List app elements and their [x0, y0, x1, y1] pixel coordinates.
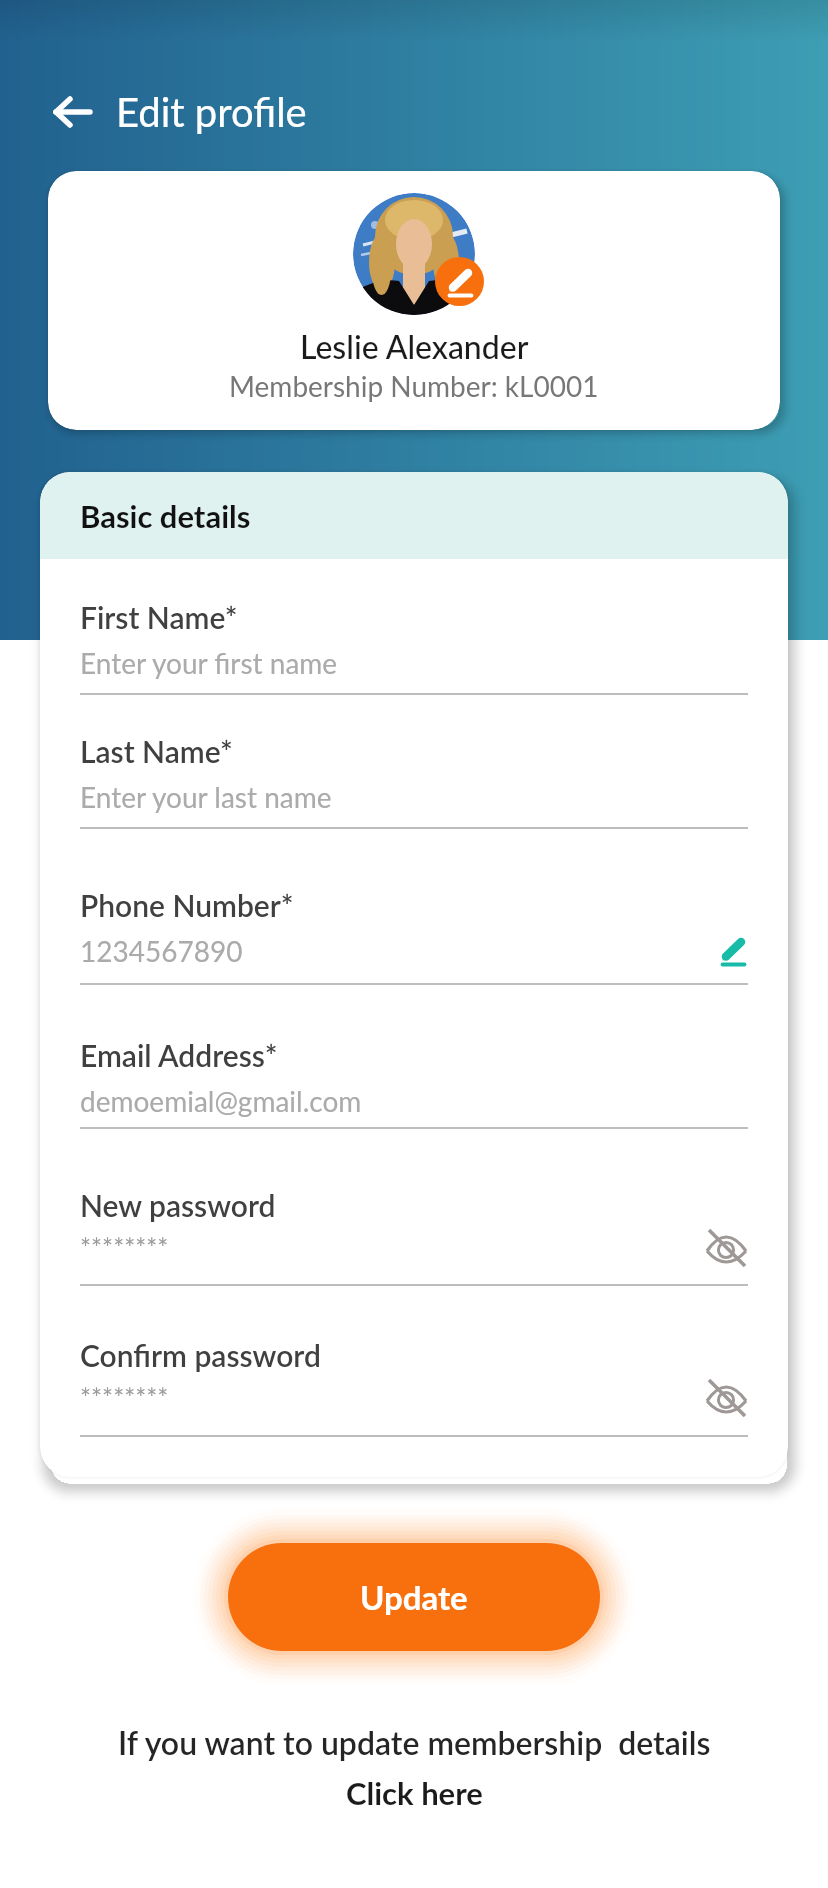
- button[interactable]: [435, 257, 484, 306]
- button[interactable]: Update: [228, 1543, 600, 1651]
- staticText: Confirm password: [80, 1337, 321, 1373]
- button[interactable]: Click here: [0, 1770, 828, 1814]
- staticText: Basic details: [80, 497, 251, 534]
- staticText: 1234567890: [80, 934, 243, 968]
- staticText: Last Name*: [80, 733, 233, 769]
- staticText: Update: [360, 1577, 468, 1617]
- staticText: Membership Number: kL0001: [229, 369, 599, 403]
- staticText: Leslie Alexander: [300, 327, 529, 365]
- staticText: Enter your last name: [80, 780, 332, 814]
- staticText: New password: [80, 1187, 276, 1223]
- staticText: ********: [80, 1232, 169, 1263]
- staticText: demoemial@gmail.com: [80, 1084, 362, 1118]
- button[interactable]: [706, 1377, 748, 1417]
- button[interactable]: [718, 936, 748, 966]
- staticText: If you want to update membership details: [118, 1723, 711, 1761]
- button[interactable]: [54, 88, 98, 136]
- staticText: Edit profile: [116, 88, 307, 136]
- staticText: Enter your first name: [80, 646, 338, 680]
- staticText: Phone Number*: [80, 887, 294, 923]
- button[interactable]: [706, 1227, 748, 1267]
- staticText: Email Address*: [80, 1037, 278, 1073]
- staticText: First Name*: [80, 599, 238, 635]
- staticText: ********: [80, 1382, 169, 1413]
- staticText: Click here: [346, 1774, 483, 1811]
